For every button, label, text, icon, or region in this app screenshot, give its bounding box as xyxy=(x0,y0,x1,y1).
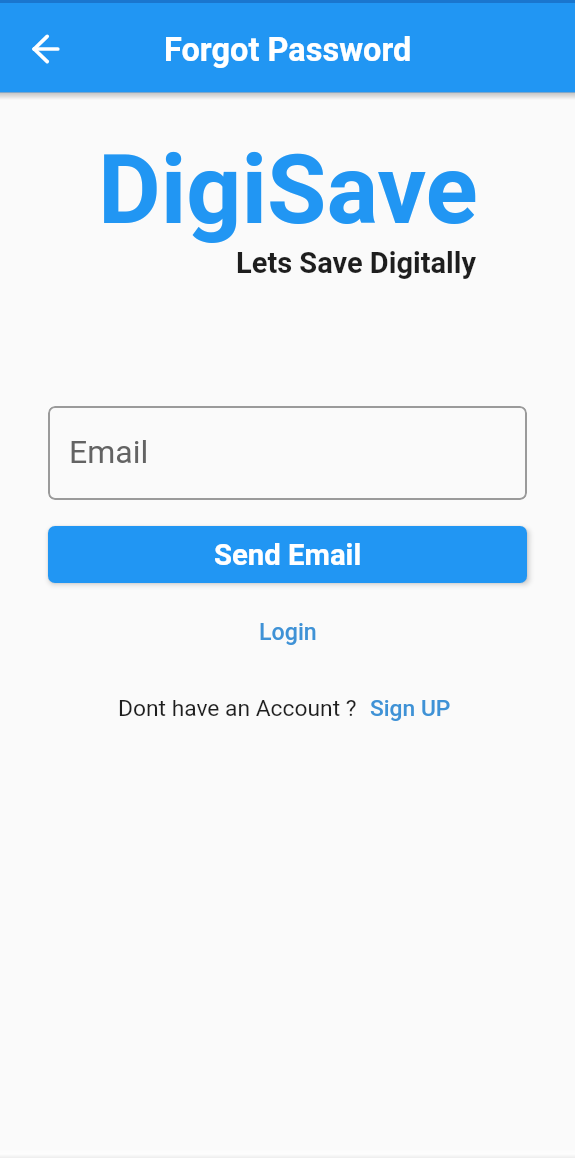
button[interactable]: Sign UP xyxy=(370,695,451,722)
staticText: Email xyxy=(69,433,149,471)
staticText: Login xyxy=(259,618,317,645)
button[interactable]: Login xyxy=(243,610,333,653)
staticText: Sign UP xyxy=(370,695,451,722)
button[interactable]: Email xyxy=(48,406,527,500)
staticText: Dont have an Account ? xyxy=(118,695,357,722)
staticText: Send Email xyxy=(214,538,362,572)
staticText: Lets Save Digitally xyxy=(236,246,476,280)
button[interactable]: Send Email xyxy=(48,526,527,583)
staticText: Forgot Password xyxy=(164,31,412,69)
staticText: DigiSave xyxy=(98,133,478,246)
button[interactable]: Back xyxy=(22,25,70,73)
